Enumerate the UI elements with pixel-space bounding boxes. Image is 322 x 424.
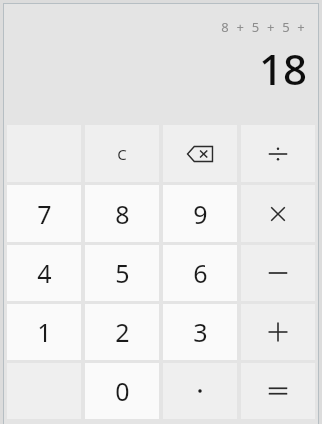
staticText: 3 — [193, 315, 208, 349]
staticText: 18 — [258, 40, 307, 97]
button[interactable]: 7 — [7, 185, 81, 242]
button[interactable]: 3 — [163, 304, 237, 360]
staticText: 0 — [115, 374, 130, 408]
button[interactable]: 1 — [7, 304, 81, 360]
button[interactable]: Backspace — [163, 125, 237, 182]
staticText: 6 — [193, 256, 208, 290]
button[interactable]: Plus — [241, 304, 315, 360]
button[interactable]: 5 — [85, 245, 159, 301]
button[interactable]: 4 — [7, 245, 81, 301]
button[interactable]: Multiply — [241, 185, 315, 242]
button[interactable]: 8 — [85, 185, 159, 242]
staticText: 8 + 5 + 5 + — [221, 18, 307, 36]
button[interactable]: C — [85, 125, 159, 182]
button[interactable]: Minus — [241, 245, 315, 301]
staticText: 7 — [37, 197, 52, 231]
button[interactable]: 0 — [85, 363, 159, 419]
button[interactable]: 2 — [85, 304, 159, 360]
button[interactable]: 9 — [163, 185, 237, 242]
staticText: 1 — [37, 315, 52, 349]
button[interactable]: Equals — [241, 363, 315, 419]
button[interactable]: Divide — [241, 125, 315, 182]
staticText: 9 — [193, 197, 208, 231]
staticText: C — [117, 144, 127, 164]
staticText: 5 — [115, 256, 130, 290]
button[interactable]: Decimal point — [163, 363, 237, 419]
staticText: 8 — [115, 197, 130, 231]
staticText: 4 — [37, 256, 52, 290]
button[interactable]: 6 — [163, 245, 237, 301]
staticText: 2 — [115, 315, 130, 349]
